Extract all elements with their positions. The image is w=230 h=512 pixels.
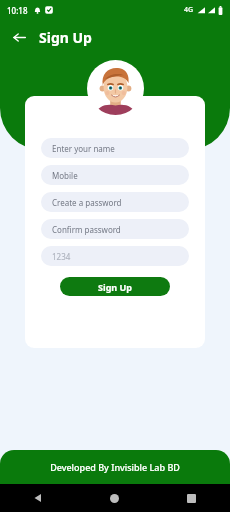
- staticText: Sign Up: [98, 281, 133, 293]
- staticText: 1234: [52, 251, 71, 262]
- button[interactable]: Sign Up: [60, 277, 170, 296]
- button[interactable]: Confirm password: [41, 219, 189, 239]
- button[interactable]: Enter your name: [41, 138, 189, 158]
- button[interactable]: Recent apps: [153, 484, 230, 512]
- button[interactable]: Create a password: [41, 192, 189, 212]
- staticText: Developed By Invisible Lab BD: [50, 461, 180, 473]
- button[interactable]: Back: [0, 484, 76, 512]
- staticText: Mobile: [52, 170, 78, 181]
- button[interactable]: Home: [76, 484, 153, 512]
- staticText: Sign Up: [39, 28, 92, 47]
- staticText: 4G: [184, 5, 194, 15]
- button[interactable]: Mobile: [41, 165, 189, 185]
- button[interactable]: Back: [8, 26, 30, 48]
- staticText: Confirm password: [52, 224, 121, 235]
- staticText: 10:18: [7, 5, 28, 16]
- button[interactable]: Developed By Invisible Lab BD: [0, 450, 230, 484]
- button[interactable]: 1234: [41, 246, 189, 266]
- staticText: Enter your name: [52, 143, 115, 154]
- staticText: Create a password: [52, 197, 122, 208]
